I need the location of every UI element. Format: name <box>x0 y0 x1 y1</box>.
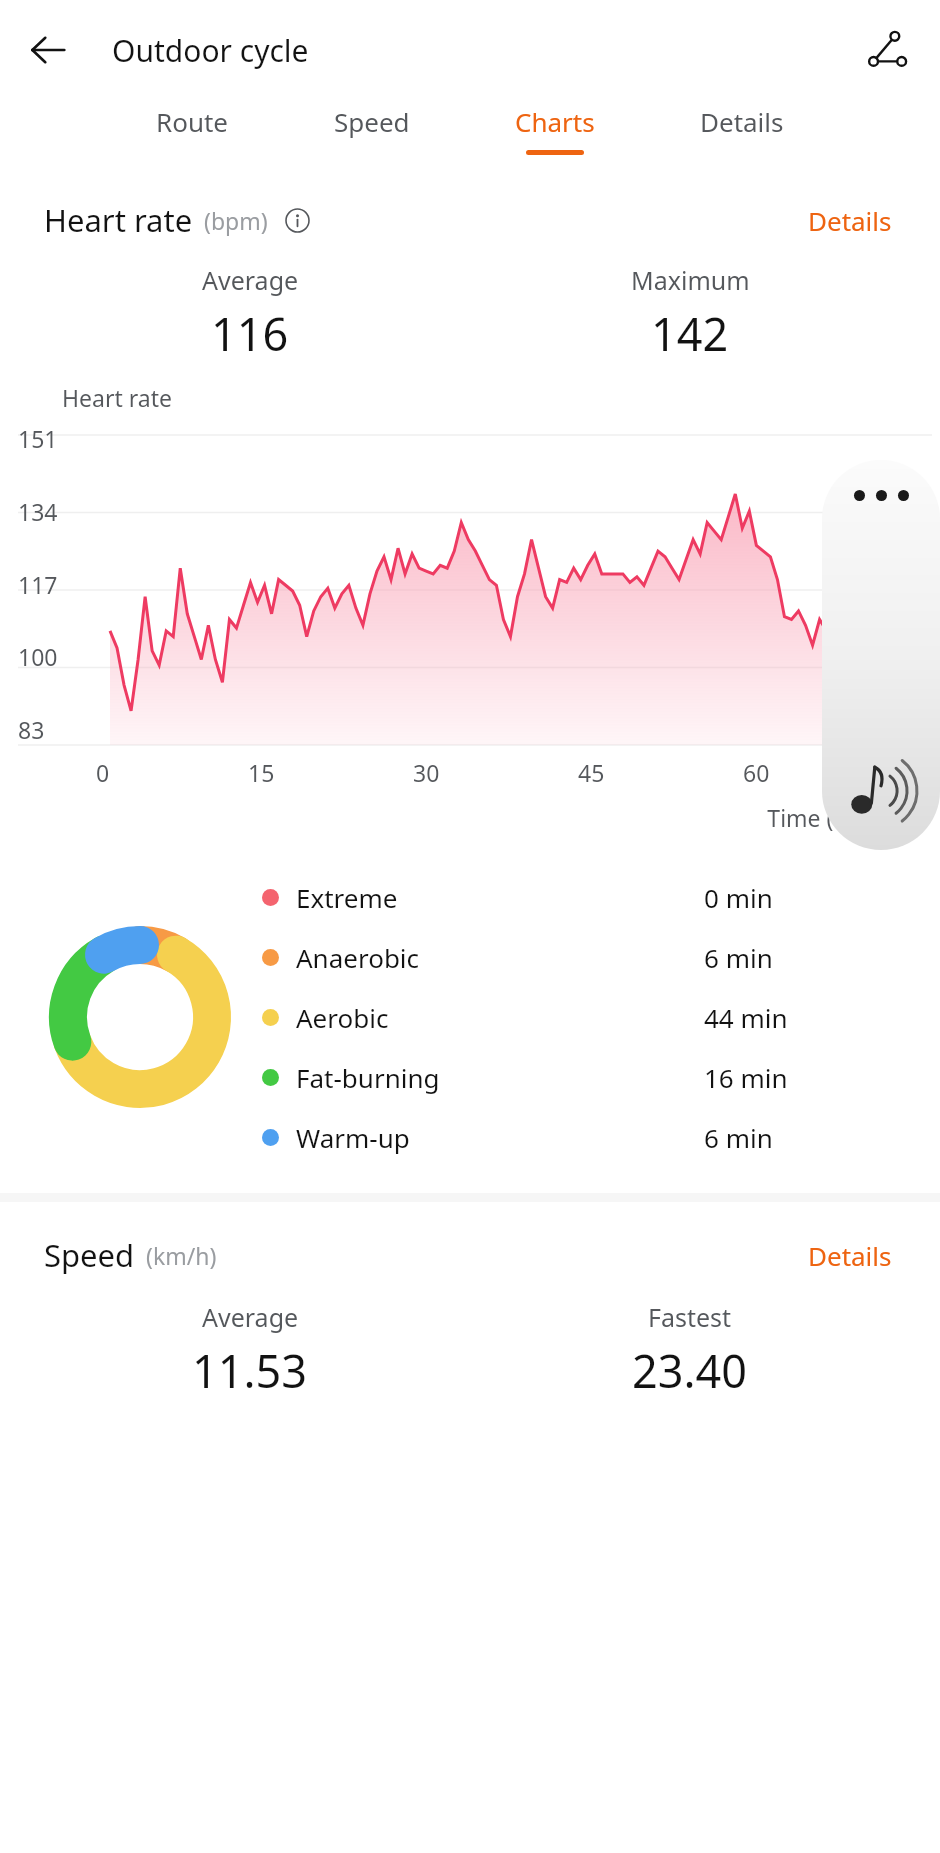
button[interactable]: Route <box>150 100 235 159</box>
button[interactable]: Aerobic <box>262 987 904 1047</box>
staticText: 100 <box>18 641 58 672</box>
staticText: Maximum <box>631 263 750 297</box>
staticText: 6 min <box>704 940 773 975</box>
staticText: 15 <box>248 757 275 788</box>
staticText: 0 min <box>704 880 773 915</box>
staticText: Average <box>202 263 299 297</box>
staticText: 0 <box>96 757 110 788</box>
button[interactable]: Back <box>16 18 80 82</box>
staticText: 116 <box>211 303 289 364</box>
staticText: Details <box>808 1238 892 1273</box>
staticText: 45 <box>578 757 605 788</box>
staticText: Charts <box>515 104 595 139</box>
staticText: 151 <box>18 423 58 454</box>
staticText: Warm-up <box>296 1120 410 1155</box>
staticText: 23.40 <box>632 1340 748 1401</box>
button[interactable]: Music controls <box>822 460 940 850</box>
staticText: Details <box>808 203 892 238</box>
staticText: Fat-burning <box>296 1060 440 1095</box>
button[interactable]: Details <box>800 199 900 242</box>
staticText: Outdoor cycle <box>112 30 309 71</box>
staticText: 83 <box>18 714 45 745</box>
staticText: Speed <box>44 1234 135 1276</box>
button[interactable]: Details <box>694 100 790 159</box>
staticText: Anaerobic <box>296 940 420 975</box>
staticText: Fastest <box>648 1300 732 1334</box>
staticText: Heart rate <box>44 199 193 241</box>
button[interactable]: Details <box>800 1234 900 1277</box>
staticText: Heart rate <box>62 382 172 413</box>
staticText: 16 min <box>704 1060 788 1095</box>
button[interactable]: Warm-up <box>262 1107 904 1167</box>
staticText: Extreme <box>296 880 398 915</box>
staticText: 44 min <box>704 1000 788 1035</box>
staticText: Aerobic <box>296 1000 389 1035</box>
staticText: 11.53 <box>192 1340 308 1401</box>
staticText: Details <box>700 104 784 139</box>
button[interactable]: Charts <box>509 100 601 159</box>
staticText: 30 <box>413 757 440 788</box>
staticText: 134 <box>18 496 58 527</box>
staticText: (km/h) <box>146 1240 217 1271</box>
button[interactable]: Anaerobic <box>262 927 904 987</box>
staticText: (bpm) <box>204 205 268 236</box>
staticText: 6 min <box>704 1120 773 1155</box>
staticText: Average <box>202 1300 299 1334</box>
staticText: Speed <box>334 104 410 139</box>
button[interactable]: Fat-burning <box>262 1047 904 1107</box>
staticText: Time (min) <box>0 802 882 833</box>
button[interactable]: Info <box>280 203 314 237</box>
staticText: Route <box>156 104 229 139</box>
button[interactable]: Speed <box>328 100 416 159</box>
button[interactable]: Extreme <box>262 867 904 927</box>
staticText: 117 <box>18 569 58 600</box>
staticText: 60 <box>743 757 770 788</box>
staticText: 142 <box>651 303 729 364</box>
button[interactable]: Share route <box>856 18 920 82</box>
